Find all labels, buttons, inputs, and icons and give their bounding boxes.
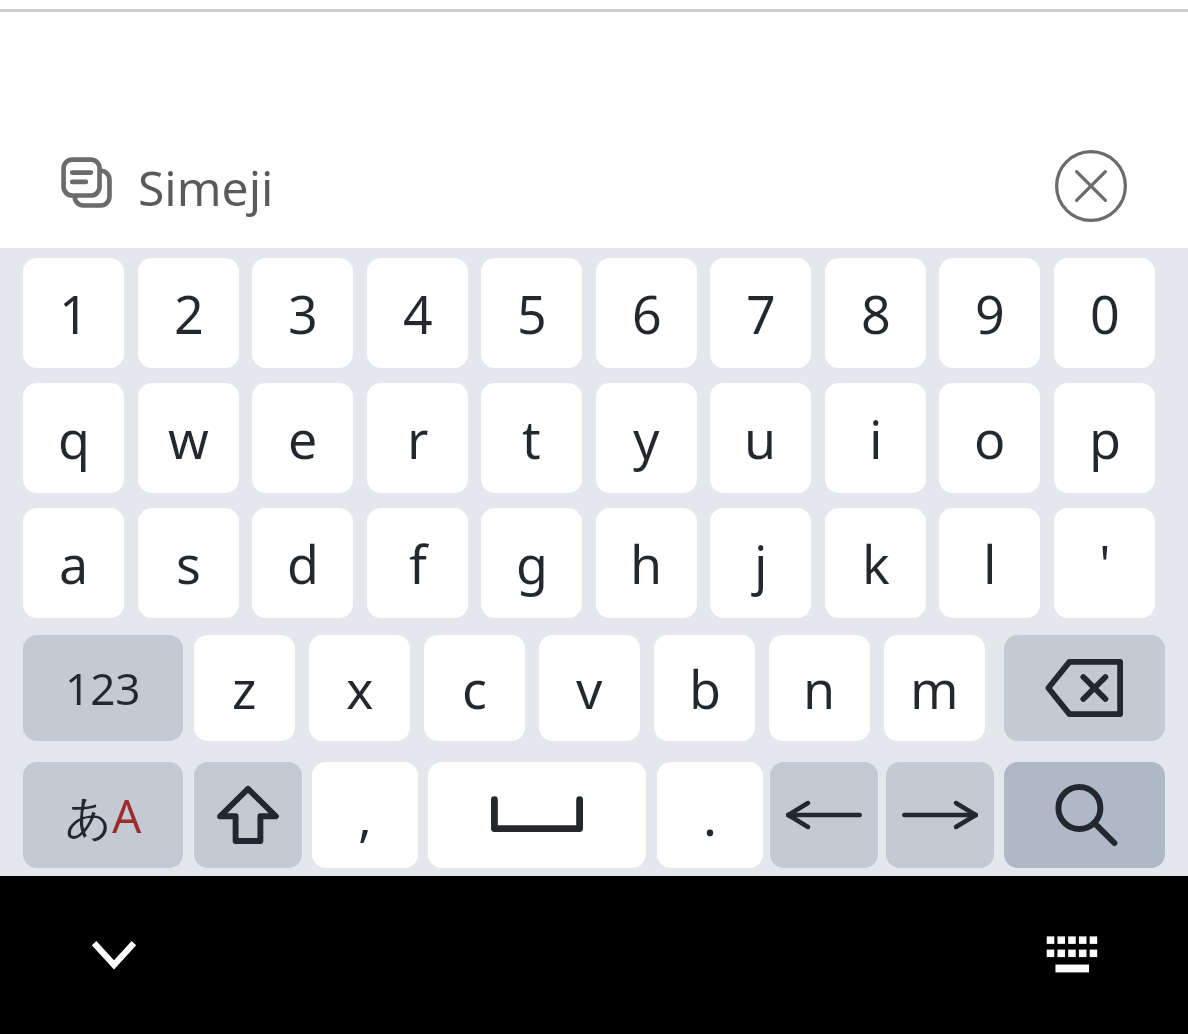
button[interactable]: Hide keyboard: [68, 908, 160, 1000]
button[interactable]: ,: [312, 762, 418, 868]
staticText: w: [168, 403, 209, 474]
button[interactable]: x: [309, 635, 410, 741]
button[interactable]: Search: [1004, 762, 1165, 868]
button[interactable]: y: [596, 383, 697, 493]
button[interactable]: a: [23, 508, 124, 618]
button[interactable]: r: [367, 383, 468, 493]
button[interactable]: e: [252, 383, 353, 493]
button[interactable]: d: [252, 508, 353, 618]
staticText: v: [576, 653, 603, 724]
button[interactable]: Close: [1048, 143, 1134, 229]
staticText: i: [869, 403, 883, 474]
staticText: ': [1099, 528, 1111, 599]
button[interactable]: .: [657, 762, 763, 868]
staticText: 1: [59, 278, 89, 349]
button[interactable]: Cursor right: [886, 762, 994, 868]
button[interactable]: 4: [367, 258, 468, 368]
button[interactable]: l: [939, 508, 1040, 618]
staticText: q: [58, 403, 90, 474]
staticText: b: [689, 653, 721, 724]
staticText: l: [983, 528, 997, 599]
staticText: m: [910, 653, 959, 724]
button[interactable]: 123: [23, 635, 183, 741]
button[interactable]: z: [194, 635, 295, 741]
staticText: 9: [975, 278, 1005, 349]
button[interactable]: n: [769, 635, 870, 741]
button[interactable]: 7: [710, 258, 811, 368]
staticText: d: [287, 528, 319, 599]
button[interactable]: Space: [428, 762, 646, 868]
button[interactable]: k: [825, 508, 926, 618]
button[interactable]: 2: [138, 258, 239, 368]
button[interactable]: v: [539, 635, 640, 741]
button[interactable]: 3: [252, 258, 353, 368]
staticText: z: [232, 653, 257, 724]
staticText: k: [862, 528, 890, 599]
button[interactable]: Simeji: [40, 142, 330, 232]
button[interactable]: 0: [1054, 258, 1155, 368]
button[interactable]: g: [481, 508, 582, 618]
button[interactable]: s: [138, 508, 239, 618]
staticText: r: [407, 403, 429, 474]
button[interactable]: 5: [481, 258, 582, 368]
staticText: ,: [358, 780, 372, 851]
button[interactable]: Shift: [194, 762, 302, 868]
button[interactable]: m: [884, 635, 985, 741]
staticText: 4: [403, 278, 433, 349]
button[interactable]: 9: [939, 258, 1040, 368]
staticText: o: [974, 403, 1006, 474]
staticText: h: [630, 528, 663, 599]
staticText: t: [522, 403, 541, 474]
staticText: u: [744, 403, 777, 474]
button[interactable]: w: [138, 383, 239, 493]
staticText: s: [176, 528, 201, 599]
button[interactable]: o: [939, 383, 1040, 493]
staticText: 2: [174, 278, 204, 349]
staticText: y: [633, 403, 660, 474]
staticText: n: [803, 653, 836, 724]
staticText: x: [346, 653, 374, 724]
staticText: 8: [861, 278, 891, 349]
button[interactable]: Cursor left: [770, 762, 878, 868]
staticText: g: [516, 528, 548, 599]
button[interactable]: 6: [596, 258, 697, 368]
staticText: 123: [65, 658, 141, 718]
button[interactable]: t: [481, 383, 582, 493]
staticText: a: [59, 528, 89, 599]
staticText: .: [703, 780, 717, 851]
staticText: 5: [517, 278, 547, 349]
staticText: 7: [746, 278, 776, 349]
button[interactable]: p: [1054, 383, 1155, 493]
button[interactable]: q: [23, 383, 124, 493]
button[interactable]: j: [710, 508, 811, 618]
button[interactable]: u: [710, 383, 811, 493]
staticText: 0: [1090, 278, 1120, 349]
staticText: p: [1089, 403, 1121, 474]
button[interactable]: h: [596, 508, 697, 618]
staticText: あA: [65, 784, 142, 847]
button[interactable]: Switch keyboard: [1028, 908, 1120, 1000]
staticText: 6: [632, 278, 662, 349]
button[interactable]: 8: [825, 258, 926, 368]
staticText: 3: [288, 278, 318, 349]
button[interactable]: b: [654, 635, 755, 741]
staticText: j: [754, 528, 768, 599]
button[interactable]: 1: [23, 258, 124, 368]
button[interactable]: f: [367, 508, 468, 618]
staticText: c: [462, 653, 487, 724]
button[interactable]: ': [1054, 508, 1155, 618]
button[interactable]: Backspace: [1004, 635, 1165, 741]
staticText: f: [409, 528, 427, 599]
button[interactable]: c: [424, 635, 525, 741]
staticText: e: [288, 403, 318, 474]
button[interactable]: あA: [23, 762, 183, 868]
button[interactable]: i: [825, 383, 926, 493]
staticText: Simeji: [138, 155, 274, 220]
